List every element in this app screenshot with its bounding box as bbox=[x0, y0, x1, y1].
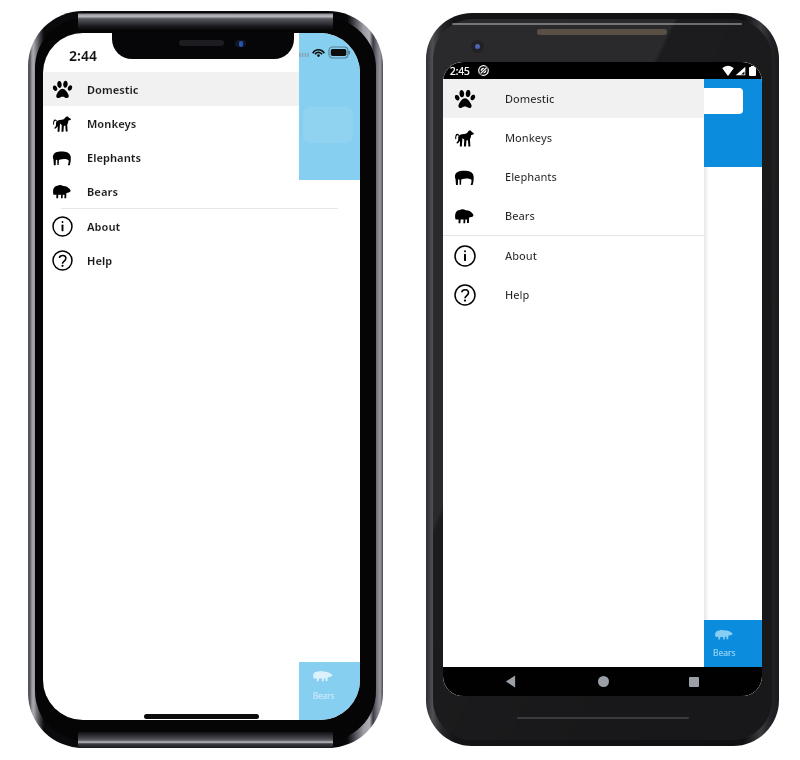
staticText: 2:45 bbox=[450, 64, 470, 78]
staticText: 2:44 bbox=[69, 46, 97, 65]
staticText: Bears bbox=[313, 690, 335, 701]
button[interactable]: Monkeys bbox=[443, 118, 704, 157]
button[interactable]: Elephants bbox=[43, 140, 360, 174]
staticText: Bears bbox=[505, 208, 535, 223]
staticText: Help bbox=[505, 287, 530, 302]
staticText: Elephants bbox=[87, 150, 142, 165]
staticText: Monkeys bbox=[87, 116, 137, 131]
button[interactable]: Elephants bbox=[443, 157, 704, 196]
button[interactable]: About bbox=[443, 236, 704, 275]
button[interactable]: Domestic bbox=[43, 72, 360, 106]
staticText: About bbox=[87, 219, 121, 234]
staticText: Domestic bbox=[87, 82, 139, 97]
button[interactable]: Bears bbox=[443, 196, 704, 235]
staticText: Bears bbox=[87, 184, 118, 199]
button[interactable]: Domestic bbox=[443, 79, 704, 118]
button[interactable]: Help bbox=[43, 243, 360, 277]
button[interactable]: Monkeys bbox=[43, 106, 360, 140]
staticText: Bears bbox=[713, 647, 736, 659]
button[interactable]: Bears bbox=[43, 174, 360, 208]
button[interactable]: Bears bbox=[299, 662, 360, 720]
button[interactable]: About bbox=[43, 209, 360, 243]
staticText: Domestic bbox=[505, 91, 555, 106]
button[interactable]: Help bbox=[443, 275, 704, 314]
button[interactable]: Bears bbox=[704, 620, 762, 667]
staticText: About bbox=[505, 248, 537, 263]
staticText: Elephants bbox=[505, 169, 557, 184]
button[interactable]: Home bbox=[587, 667, 619, 696]
button[interactable]: Recent apps bbox=[678, 667, 710, 696]
staticText: Help bbox=[87, 253, 113, 268]
staticText: Monkeys bbox=[505, 130, 553, 145]
button[interactable]: Back bbox=[494, 667, 526, 696]
